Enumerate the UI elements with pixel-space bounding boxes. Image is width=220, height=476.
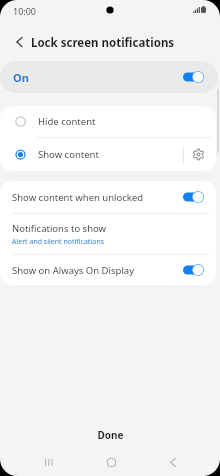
staticText: Show on Always On Display xyxy=(12,264,135,277)
button[interactable]: Recent apps xyxy=(32,450,65,474)
button[interactable]: Show content xyxy=(0,138,183,171)
button[interactable]: Hide content xyxy=(0,106,216,137)
staticText: Notifications to show xyxy=(12,222,107,235)
staticText: Show content xyxy=(38,148,99,161)
button[interactable]: Show content when unlocked xyxy=(0,181,216,213)
button[interactable]: Show on Always On Display xyxy=(0,255,216,285)
button[interactable]: On xyxy=(0,61,218,93)
staticText: 10:00 xyxy=(13,5,37,17)
staticText: On xyxy=(13,70,29,85)
staticText: Show content when unlocked xyxy=(12,191,144,204)
button[interactable]: Notification settings xyxy=(184,138,216,171)
button[interactable]: Back xyxy=(156,450,189,474)
button[interactable]: Notifications to show xyxy=(0,214,216,254)
button[interactable]: Home xyxy=(94,450,128,474)
staticText: Lock screen notifications xyxy=(31,35,175,51)
button[interactable]: Back xyxy=(7,31,31,53)
staticText: Hide content xyxy=(38,115,96,128)
staticText: Done xyxy=(97,428,124,442)
staticText: Alert and silent notifications xyxy=(12,237,105,247)
button[interactable]: Done xyxy=(0,424,220,446)
